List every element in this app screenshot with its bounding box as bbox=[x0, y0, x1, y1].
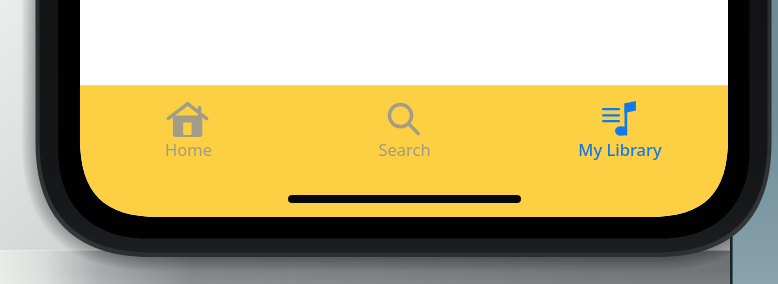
staticText: My Library bbox=[578, 138, 662, 160]
staticText: Home bbox=[165, 138, 212, 160]
button[interactable]: My Library bbox=[512, 86, 728, 217]
staticText: Search bbox=[378, 138, 431, 160]
button[interactable]: Search bbox=[296, 86, 512, 217]
button[interactable]: Home bbox=[80, 86, 296, 217]
